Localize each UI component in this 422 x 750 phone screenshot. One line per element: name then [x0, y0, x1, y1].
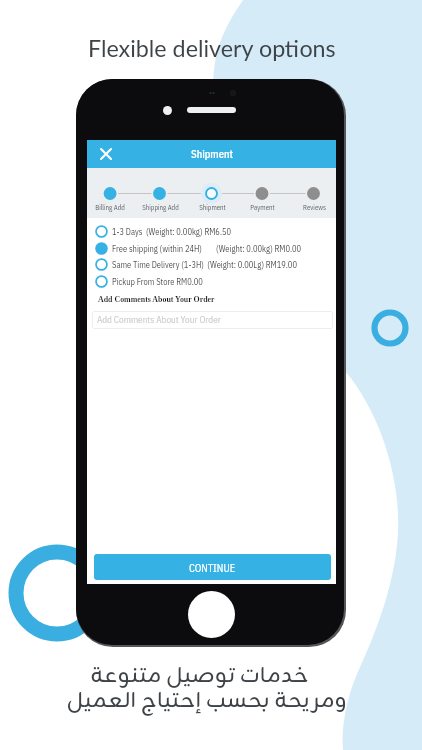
- button[interactable]: Pickup From Store RM0.00: [87, 273, 336, 289]
- button[interactable]: Billing Add: [88, 203, 132, 212]
- staticText: Billing Add: [95, 203, 125, 212]
- staticText: ومريحة بحسب إحتياج العميل: [66, 684, 347, 719]
- staticText: Add Comments About Your Order: [98, 295, 215, 304]
- button[interactable]: 1-3 Days (Weight: 0.00kg) RM6.50: [87, 223, 336, 239]
- button[interactable]: Add Comments About Your Order: [92, 311, 333, 329]
- staticText: خدمات توصيل متنوعة: [90, 659, 309, 694]
- button[interactable]: Shipment: [190, 203, 234, 212]
- button[interactable]: Same Time Delivery (1-3H) (Weight: 0.00L…: [87, 256, 336, 272]
- button[interactable]: Free shipping (within 24H) (Weight: 0.00…: [87, 240, 336, 256]
- button[interactable]: Close: [99, 147, 113, 161]
- button[interactable]: Shipping Add: [138, 203, 182, 212]
- staticText: Shipment: [199, 203, 226, 212]
- staticText: Payment: [250, 203, 275, 212]
- staticText: 1-3 Days (Weight: 0.00kg) RM6.50: [112, 226, 232, 237]
- button[interactable]: CONTINUE: [94, 554, 331, 580]
- staticText: Shipment: [191, 147, 233, 161]
- staticText: Add Comments About Your Order: [97, 314, 221, 326]
- staticText: Flexible delivery options: [88, 34, 336, 62]
- staticText: Same Time Delivery (1-3H) (Weight: 0.00L…: [112, 259, 297, 270]
- staticText: Free shipping (within 24H) (Weight: 0.00…: [112, 243, 302, 254]
- button[interactable]: Payment: [240, 203, 284, 212]
- staticText: Pickup From Store RM0.00: [112, 276, 203, 287]
- staticText: CONTINUE: [189, 561, 236, 574]
- staticText: Reviews: [303, 203, 326, 212]
- button[interactable]: Reviews: [292, 203, 336, 212]
- staticText: Shipping Add: [142, 203, 179, 212]
